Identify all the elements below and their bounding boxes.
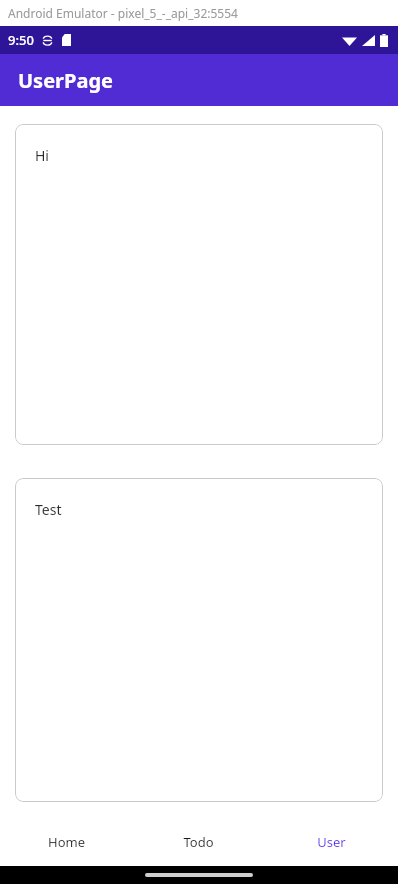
staticText: Home	[48, 833, 85, 851]
staticText: UserPage	[18, 67, 114, 94]
button[interactable]: Home	[0, 818, 132, 866]
other: Debug	[42, 35, 53, 46]
other: Mobile signal	[362, 35, 375, 46]
staticText: Android Emulator - pixel_5_-_api_32:5554	[8, 5, 238, 21]
staticText: 9:50	[8, 31, 34, 49]
other: Battery	[380, 34, 388, 47]
staticText: User	[317, 833, 346, 851]
button[interactable]: Hi	[15, 124, 383, 445]
staticText: Hi	[35, 146, 49, 165]
button[interactable]: User	[265, 818, 398, 866]
staticText: Test	[35, 500, 62, 519]
other: Wi-Fi	[342, 35, 357, 46]
button[interactable]: Todo	[132, 818, 265, 866]
button[interactable]: Test	[15, 478, 383, 802]
staticText: Todo	[183, 833, 214, 851]
other: SD card	[62, 34, 71, 46]
